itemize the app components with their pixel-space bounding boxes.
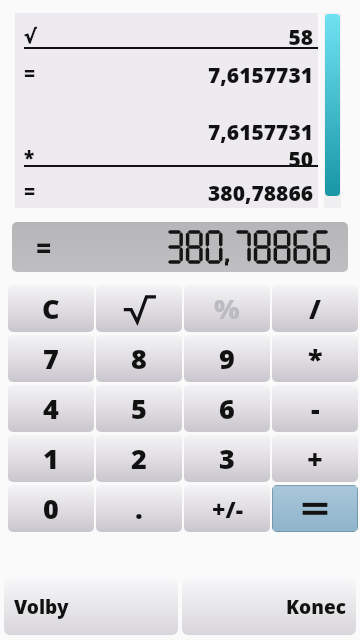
button[interactable]: / <box>272 285 358 332</box>
staticText: Konec <box>286 594 346 620</box>
staticText: 7,6157731 <box>208 61 313 87</box>
staticText: √ <box>24 25 37 47</box>
staticText: 4 <box>43 390 59 427</box>
staticText: * <box>24 145 35 171</box>
staticText: - <box>311 390 320 427</box>
button[interactable]: 9 <box>184 335 270 382</box>
button[interactable]: 2 <box>96 435 182 482</box>
button[interactable] <box>272 485 358 532</box>
button[interactable]: C <box>8 285 94 332</box>
staticText: 2 <box>131 440 147 477</box>
staticText: / <box>309 290 321 327</box>
button[interactable]: 6 <box>184 385 270 432</box>
button[interactable]: . <box>96 485 182 532</box>
button[interactable]: +/- <box>184 485 270 532</box>
staticText: 380,78866 <box>208 179 313 205</box>
staticText: 7,6157731 <box>208 118 313 144</box>
button[interactable]: 4 <box>8 385 94 432</box>
button[interactable]: 3 <box>184 435 270 482</box>
staticText: 8 <box>131 340 147 377</box>
button[interactable]: 0 <box>8 485 94 532</box>
staticText: . <box>135 490 143 527</box>
button[interactable]: + <box>272 435 358 482</box>
button[interactable]: - <box>272 385 358 432</box>
staticText: * <box>308 340 323 377</box>
staticText: Volby <box>14 594 69 620</box>
button[interactable]: Volby <box>4 578 178 635</box>
staticText: = <box>24 61 36 87</box>
staticText: 6 <box>219 390 235 427</box>
button[interactable]: % <box>184 285 270 332</box>
staticText: 5 <box>131 390 147 427</box>
button[interactable]: 7 <box>8 335 94 382</box>
staticText: 1 <box>43 440 59 477</box>
button[interactable]: 5 <box>96 385 182 432</box>
staticText: 50 <box>288 145 313 171</box>
staticText: = <box>24 179 36 205</box>
button[interactable]: 8 <box>96 335 182 382</box>
button[interactable] <box>96 285 182 332</box>
staticText: 58 <box>288 23 313 49</box>
button[interactable]: 1 <box>8 435 94 482</box>
button[interactable]: Konec <box>182 578 356 635</box>
staticText: 9 <box>219 340 235 377</box>
staticText: 7 <box>43 340 59 377</box>
staticText: = <box>36 230 52 265</box>
staticText: + <box>307 440 323 477</box>
staticText: C <box>42 290 60 327</box>
staticText: % <box>214 290 240 327</box>
staticText: +/- <box>212 493 243 524</box>
staticText: 3 <box>219 440 235 477</box>
staticText: 0 <box>43 490 59 527</box>
button[interactable]: * <box>272 335 358 382</box>
